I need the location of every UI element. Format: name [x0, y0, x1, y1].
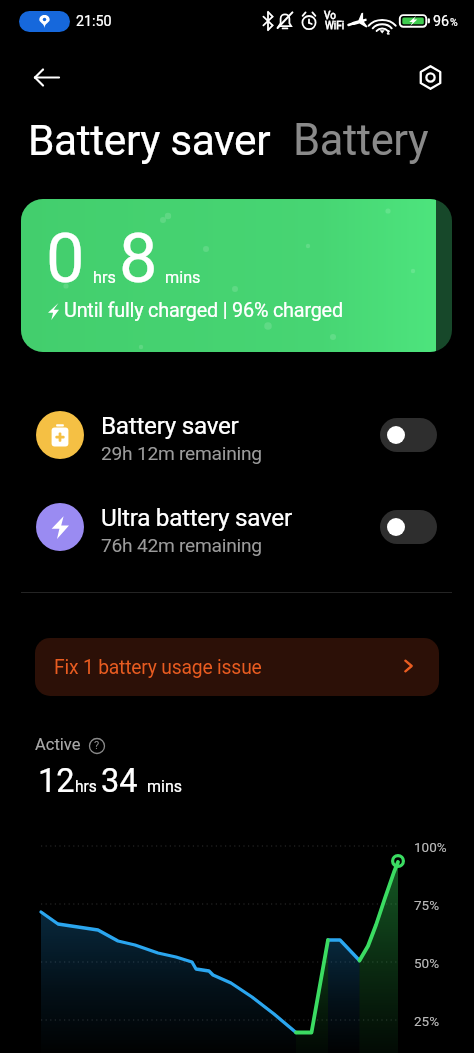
button[interactable]: Ultra battery saver: [0, 481, 474, 573]
button[interactable]: Back: [25, 55, 69, 99]
staticText: mins: [147, 777, 183, 796]
button[interactable]: [35, 638, 439, 696]
staticText: 29h 12m remaining: [101, 442, 262, 465]
staticText: Active: [35, 735, 81, 754]
staticText: 12: [38, 762, 75, 800]
staticText: 0: [46, 218, 85, 298]
staticText: 96: [433, 13, 450, 30]
button[interactable]: Settings: [408, 55, 452, 99]
staticText: 75%: [414, 897, 440, 913]
staticText: Vo: [324, 10, 336, 22]
staticText: ?: [94, 739, 100, 752]
button[interactable]: Battery saver: [0, 389, 474, 481]
staticText: 50%: [414, 955, 440, 971]
button[interactable]: [21, 199, 452, 352]
staticText: 34: [101, 762, 138, 800]
staticText: Fix 1 battery usage issue: [54, 656, 262, 679]
staticText: 8: [119, 218, 158, 298]
button[interactable]: Location in use: [19, 11, 70, 32]
button[interactable]: Battery saver: [0, 0, 243, 50]
staticText: Until fully charged | 96% charged: [64, 299, 343, 322]
staticText: 100%: [414, 839, 447, 855]
button[interactable]: Battery: [0, 0, 136, 51]
staticText: WiFi: [325, 20, 345, 32]
staticText: hrs: [93, 268, 116, 287]
staticText: %: [450, 16, 458, 28]
button[interactable]: Toggle Battery saver: [380, 418, 437, 452]
button[interactable]: Toggle Ultra battery saver: [380, 510, 437, 544]
staticText: Ultra battery saver: [101, 503, 292, 531]
staticText: 21:50: [76, 13, 112, 30]
staticText: 76h 42m remaining: [101, 534, 262, 557]
staticText: Battery saver: [101, 411, 239, 439]
staticText: mins: [165, 268, 201, 287]
staticText: hrs: [75, 778, 97, 796]
staticText: 25%: [414, 1013, 440, 1029]
button[interactable]: Help: [88, 737, 105, 754]
